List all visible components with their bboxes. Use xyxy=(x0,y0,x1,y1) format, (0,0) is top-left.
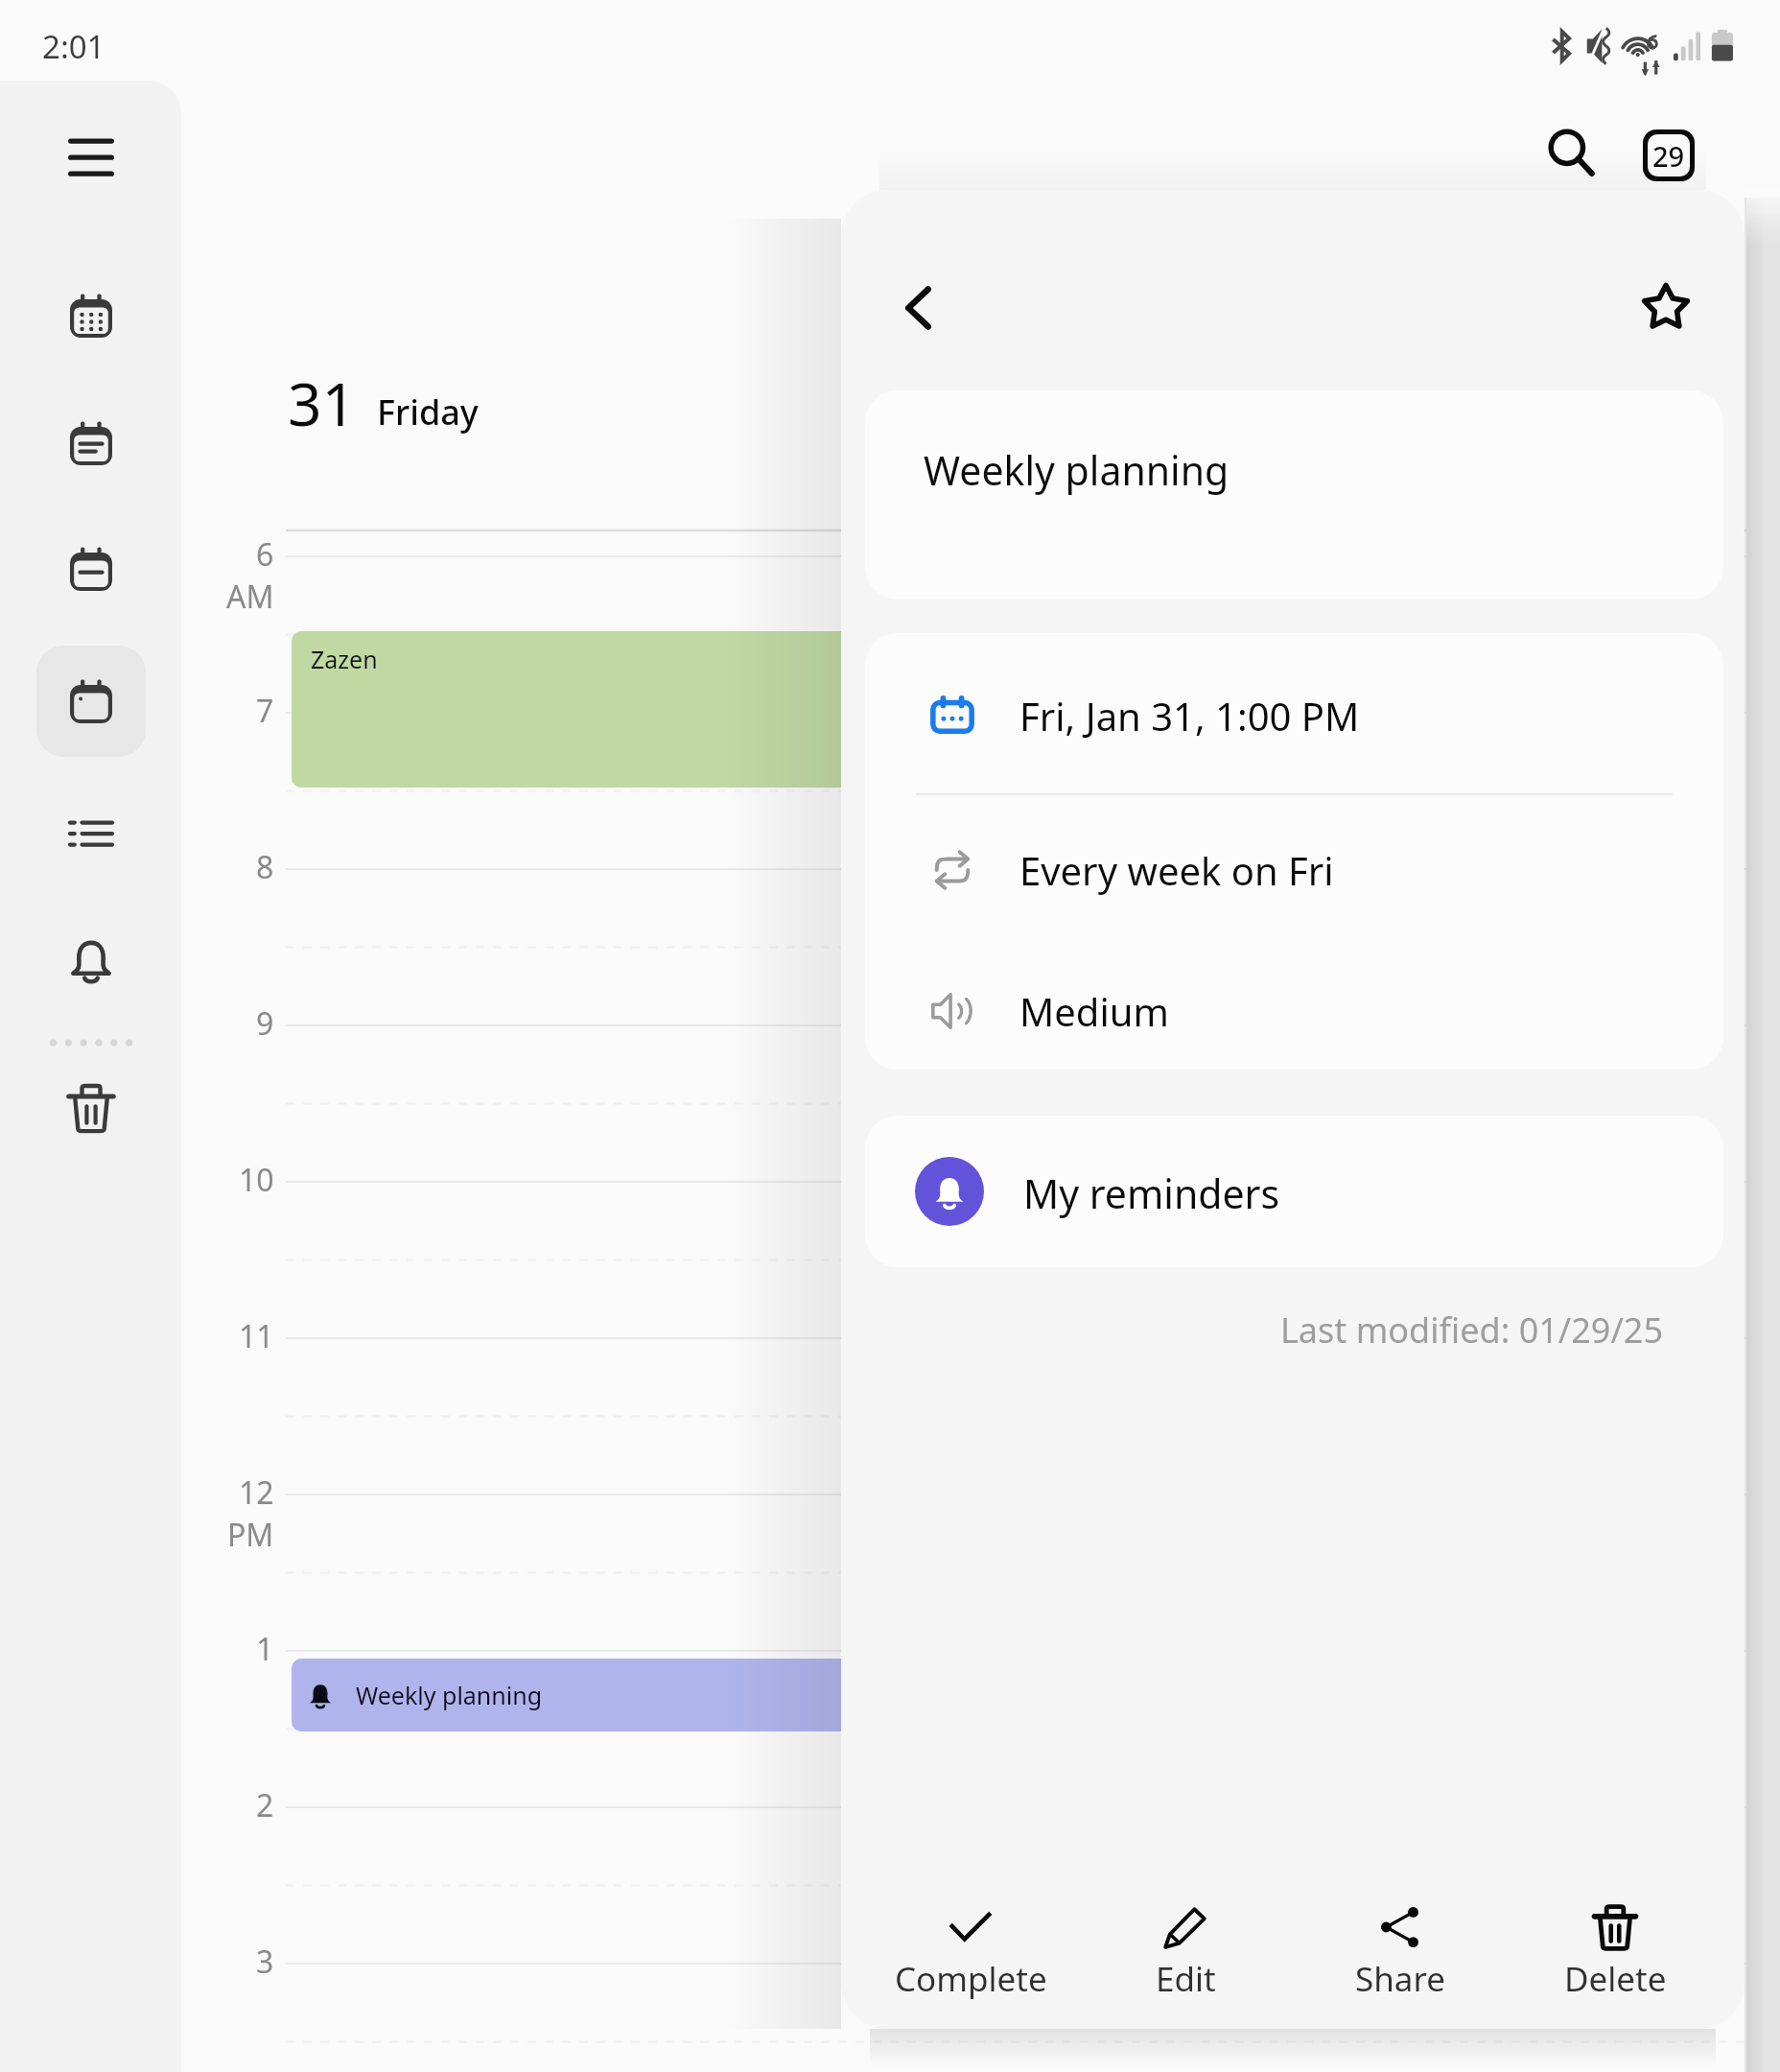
button[interactable]: Menu xyxy=(36,102,146,213)
staticText: 12 xyxy=(239,1472,274,1514)
button[interactable]: Back xyxy=(878,268,959,348)
button[interactable]: Complete xyxy=(863,1864,1078,2029)
button[interactable]: Add to favourites xyxy=(1626,267,1706,347)
staticText: 2 xyxy=(256,1784,274,1826)
button[interactable]: Share xyxy=(1293,1864,1508,2029)
staticText: 9 xyxy=(256,1002,274,1045)
button[interactable]: Go to today, 29 xyxy=(1630,117,1707,194)
staticText: Zazen xyxy=(311,643,378,675)
button[interactable]: Reminders xyxy=(36,905,146,1016)
staticText: Weekly planning xyxy=(924,443,1230,497)
button[interactable]: Weekly planning xyxy=(865,390,1723,600)
button[interactable]: Delete xyxy=(1508,1864,1722,2029)
button[interactable]: Search xyxy=(1533,114,1609,191)
button[interactable]: Agenda view xyxy=(36,388,146,499)
staticText: 2:01 xyxy=(42,25,105,68)
staticText: 10 xyxy=(239,1159,274,1201)
staticText: My reminders xyxy=(1023,1166,1280,1220)
staticText: 3 xyxy=(256,1941,274,1983)
staticText: 7 xyxy=(256,690,274,732)
staticText: Weekly planning xyxy=(356,1679,543,1711)
staticText: Every week on Fri xyxy=(1019,844,1334,896)
staticText: 1 xyxy=(256,1628,274,1670)
staticText: Last modified: 01/29/25 xyxy=(1280,1307,1663,1354)
button[interactable]: Day view xyxy=(36,646,146,757)
button[interactable]: Fri, Jan 31, 1:00 PM xyxy=(865,658,1723,773)
staticText: Medium xyxy=(1019,985,1169,1037)
button[interactable]: Every week on Fri xyxy=(865,812,1723,928)
staticText: Complete xyxy=(895,1956,1047,2002)
button[interactable]: Task list xyxy=(36,778,146,889)
button[interactable]: My reminders xyxy=(865,1116,1723,1267)
button[interactable]: Month view xyxy=(36,260,146,371)
staticText: Friday xyxy=(377,388,479,436)
button[interactable]: Weekly planning xyxy=(292,1659,1251,1731)
staticText: 6 xyxy=(256,533,274,576)
button[interactable]: Medium xyxy=(865,954,1723,1069)
staticText: 29 xyxy=(1652,137,1685,175)
staticText: Edit xyxy=(1156,1956,1216,2002)
staticText: AM xyxy=(226,576,274,618)
button[interactable]: Week view xyxy=(36,513,146,624)
button[interactable]: Edit xyxy=(1078,1864,1293,2029)
staticText: Fri, Jan 31, 1:00 PM xyxy=(1019,690,1360,742)
button[interactable]: Zazen xyxy=(292,631,1251,788)
staticText: 31 xyxy=(288,363,356,443)
staticText: PM xyxy=(227,1514,274,1556)
staticText: 8 xyxy=(256,846,274,888)
button[interactable]: Trash xyxy=(36,1052,146,1164)
staticText: Delete xyxy=(1564,1956,1667,2002)
staticText: Share xyxy=(1355,1956,1445,2002)
staticText: 11 xyxy=(239,1315,274,1357)
